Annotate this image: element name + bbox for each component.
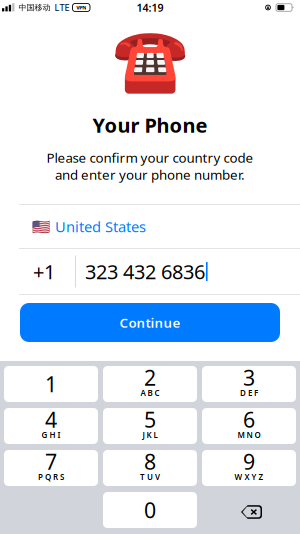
staticText: J K L [142,430,157,440]
button[interactable]: Delete [202,492,296,528]
staticText: Your Phone [92,112,207,138]
button[interactable]: 5 [103,408,197,444]
staticText: 3 [243,363,255,392]
button[interactable]: 0 [103,492,197,528]
staticText: Continue [119,314,180,331]
staticText: D E F [240,388,258,398]
staticText: 323 432 6836 [85,258,205,285]
staticText: ☎️ [112,25,188,95]
staticText: 0 [144,496,156,524]
staticText: and enter your phone number. [55,166,245,183]
staticText: 2 [144,363,156,392]
staticText: LTE [54,1,69,14]
staticText: A B C [140,388,159,398]
staticText: P Q R S [38,472,64,482]
button[interactable]: 8 [103,450,197,486]
button[interactable]: Continue [20,303,280,342]
staticText: 4 [45,405,57,434]
button[interactable]: 4 [4,408,98,444]
staticText: 中国移动 [18,3,50,12]
staticText: 5 [144,405,156,434]
button[interactable]: 6 [202,408,296,444]
staticText: 7 [45,447,57,476]
staticText: 🇺🇸 [32,218,50,235]
staticText: 6 [243,405,255,434]
staticText: M N O [237,430,260,440]
staticText: VPN [76,4,86,11]
button[interactable]: 🇺🇸 [0,205,300,248]
button[interactable]: 1 [4,366,98,402]
button[interactable]: 3 [202,366,296,402]
staticText: G H I [41,430,60,440]
button[interactable]: 2 [103,366,197,402]
staticText: +1 [33,258,55,285]
staticText: 9 [243,447,255,476]
staticText: W X Y Z [234,472,263,482]
staticText: United States [55,217,146,236]
button[interactable]: 7 [4,450,98,486]
button[interactable]: 9 [202,450,296,486]
staticText: 1 [45,370,57,398]
staticText: T U V [140,472,160,482]
staticText: 14:19 [136,0,163,15]
staticText: 8 [144,447,156,476]
staticText: Please confirm your country code [46,149,253,166]
